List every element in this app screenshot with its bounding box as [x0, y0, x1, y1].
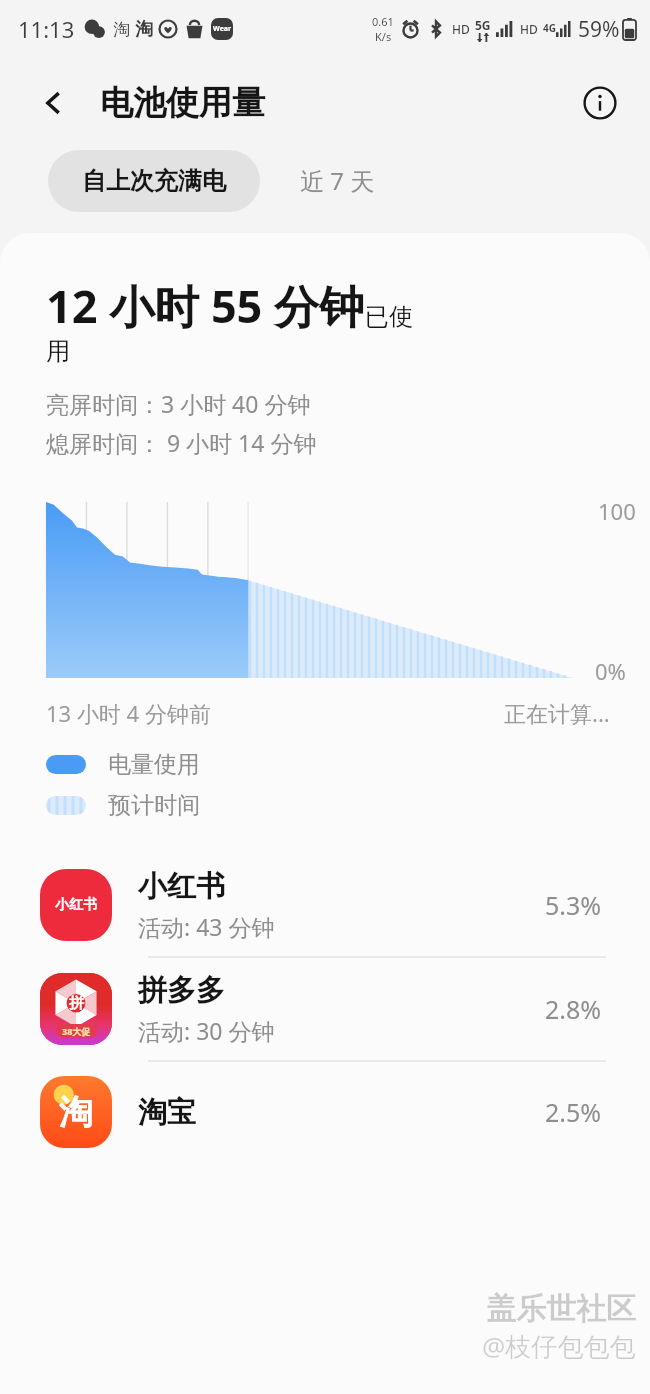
- staticText: 盖乐世社区: [486, 1290, 636, 1328]
- button[interactable]: 自上次充满电: [48, 150, 260, 212]
- staticText: 淘: [59, 1091, 93, 1134]
- staticText: 小红书: [55, 896, 97, 914]
- button[interactable]: Back: [30, 79, 78, 127]
- staticText: 亮屏时间：3 小时 40 分钟: [46, 388, 311, 419]
- staticText: 100: [598, 496, 636, 526]
- staticText: 5G: [475, 17, 491, 33]
- staticText: 淘: [135, 18, 153, 41]
- staticText: 4G: [543, 21, 556, 35]
- staticText: 已使: [365, 302, 413, 332]
- staticText: 自上次充满电: [82, 166, 226, 196]
- staticText: HD: [520, 21, 538, 37]
- staticText: 小红书: [138, 868, 225, 905]
- button[interactable]: Information: [576, 79, 624, 127]
- staticText: 13 小时 4 分钟前: [46, 698, 211, 728]
- staticText: 淘: [113, 19, 130, 40]
- staticText: 0%: [595, 656, 626, 686]
- staticText: 活动: 43 分钟: [138, 911, 275, 942]
- staticText: 12 小时 55 分钟: [46, 275, 365, 336]
- button[interactable]: 近 7 天: [260, 148, 415, 213]
- staticText: 正在计算...: [504, 698, 610, 728]
- staticText: K/s: [375, 29, 392, 44]
- staticText: 11:13: [18, 14, 75, 44]
- button[interactable]: 淘: [0, 1062, 650, 1162]
- staticText: 熄屏时间： 9 小时 14 分钟: [46, 427, 317, 458]
- staticText: 5.3%: [545, 888, 602, 922]
- staticText: 拼: [69, 994, 84, 1013]
- staticText: @枝仔包包包: [482, 1328, 636, 1364]
- staticText: 活动: 30 分钟: [138, 1015, 275, 1046]
- staticText: 拼多多: [138, 972, 225, 1009]
- staticText: 电量使用: [108, 750, 200, 779]
- staticText: 38大促: [62, 1025, 91, 1037]
- staticText: 用: [46, 336, 70, 366]
- staticText: 2.8%: [545, 992, 602, 1026]
- staticText: 预计时间: [108, 791, 200, 820]
- button[interactable]: 拼: [0, 958, 650, 1060]
- staticText: Wear: [213, 24, 232, 34]
- staticText: HD: [452, 21, 470, 37]
- staticText: 电池使用量: [100, 82, 265, 124]
- staticText: 0.61: [372, 14, 394, 29]
- staticText: 59%: [578, 15, 620, 44]
- staticText: 2.5%: [545, 1095, 602, 1129]
- button[interactable]: 小红书: [0, 854, 650, 956]
- staticText: 近 7 天: [300, 164, 375, 197]
- staticText: 淘宝: [138, 1094, 196, 1131]
